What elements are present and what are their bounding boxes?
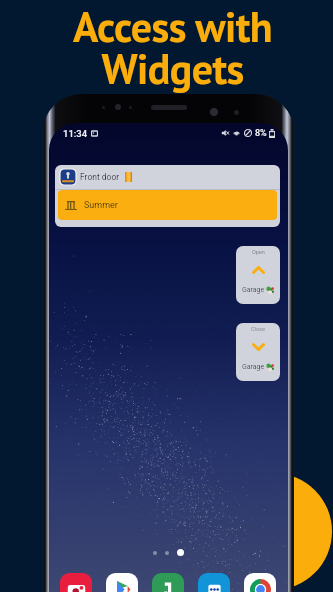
- button[interactable]: Play Store: [106, 573, 138, 592]
- staticText: Open: [252, 249, 265, 255]
- staticText: Front door: [80, 172, 120, 182]
- button[interactable]: Chrome: [244, 573, 276, 592]
- staticText: Widgets: [101, 41, 244, 95]
- staticText: 11:34: [63, 128, 88, 139]
- staticText: Summer: [84, 200, 118, 211]
- staticText: 8%: [255, 128, 267, 139]
- staticText: Garage: [242, 363, 265, 371]
- button[interactable]: Phone: [152, 573, 184, 592]
- button[interactable]: Camera: [60, 573, 92, 592]
- button[interactable]: Close: [236, 323, 280, 381]
- button[interactable]: Open: [236, 246, 280, 304]
- staticText: Access with: [73, 0, 272, 53]
- staticText: Close: [251, 326, 265, 332]
- button[interactable]: Summer: [58, 190, 277, 220]
- staticText: Garage: [242, 286, 265, 294]
- button[interactable]: Messages: [198, 573, 230, 592]
